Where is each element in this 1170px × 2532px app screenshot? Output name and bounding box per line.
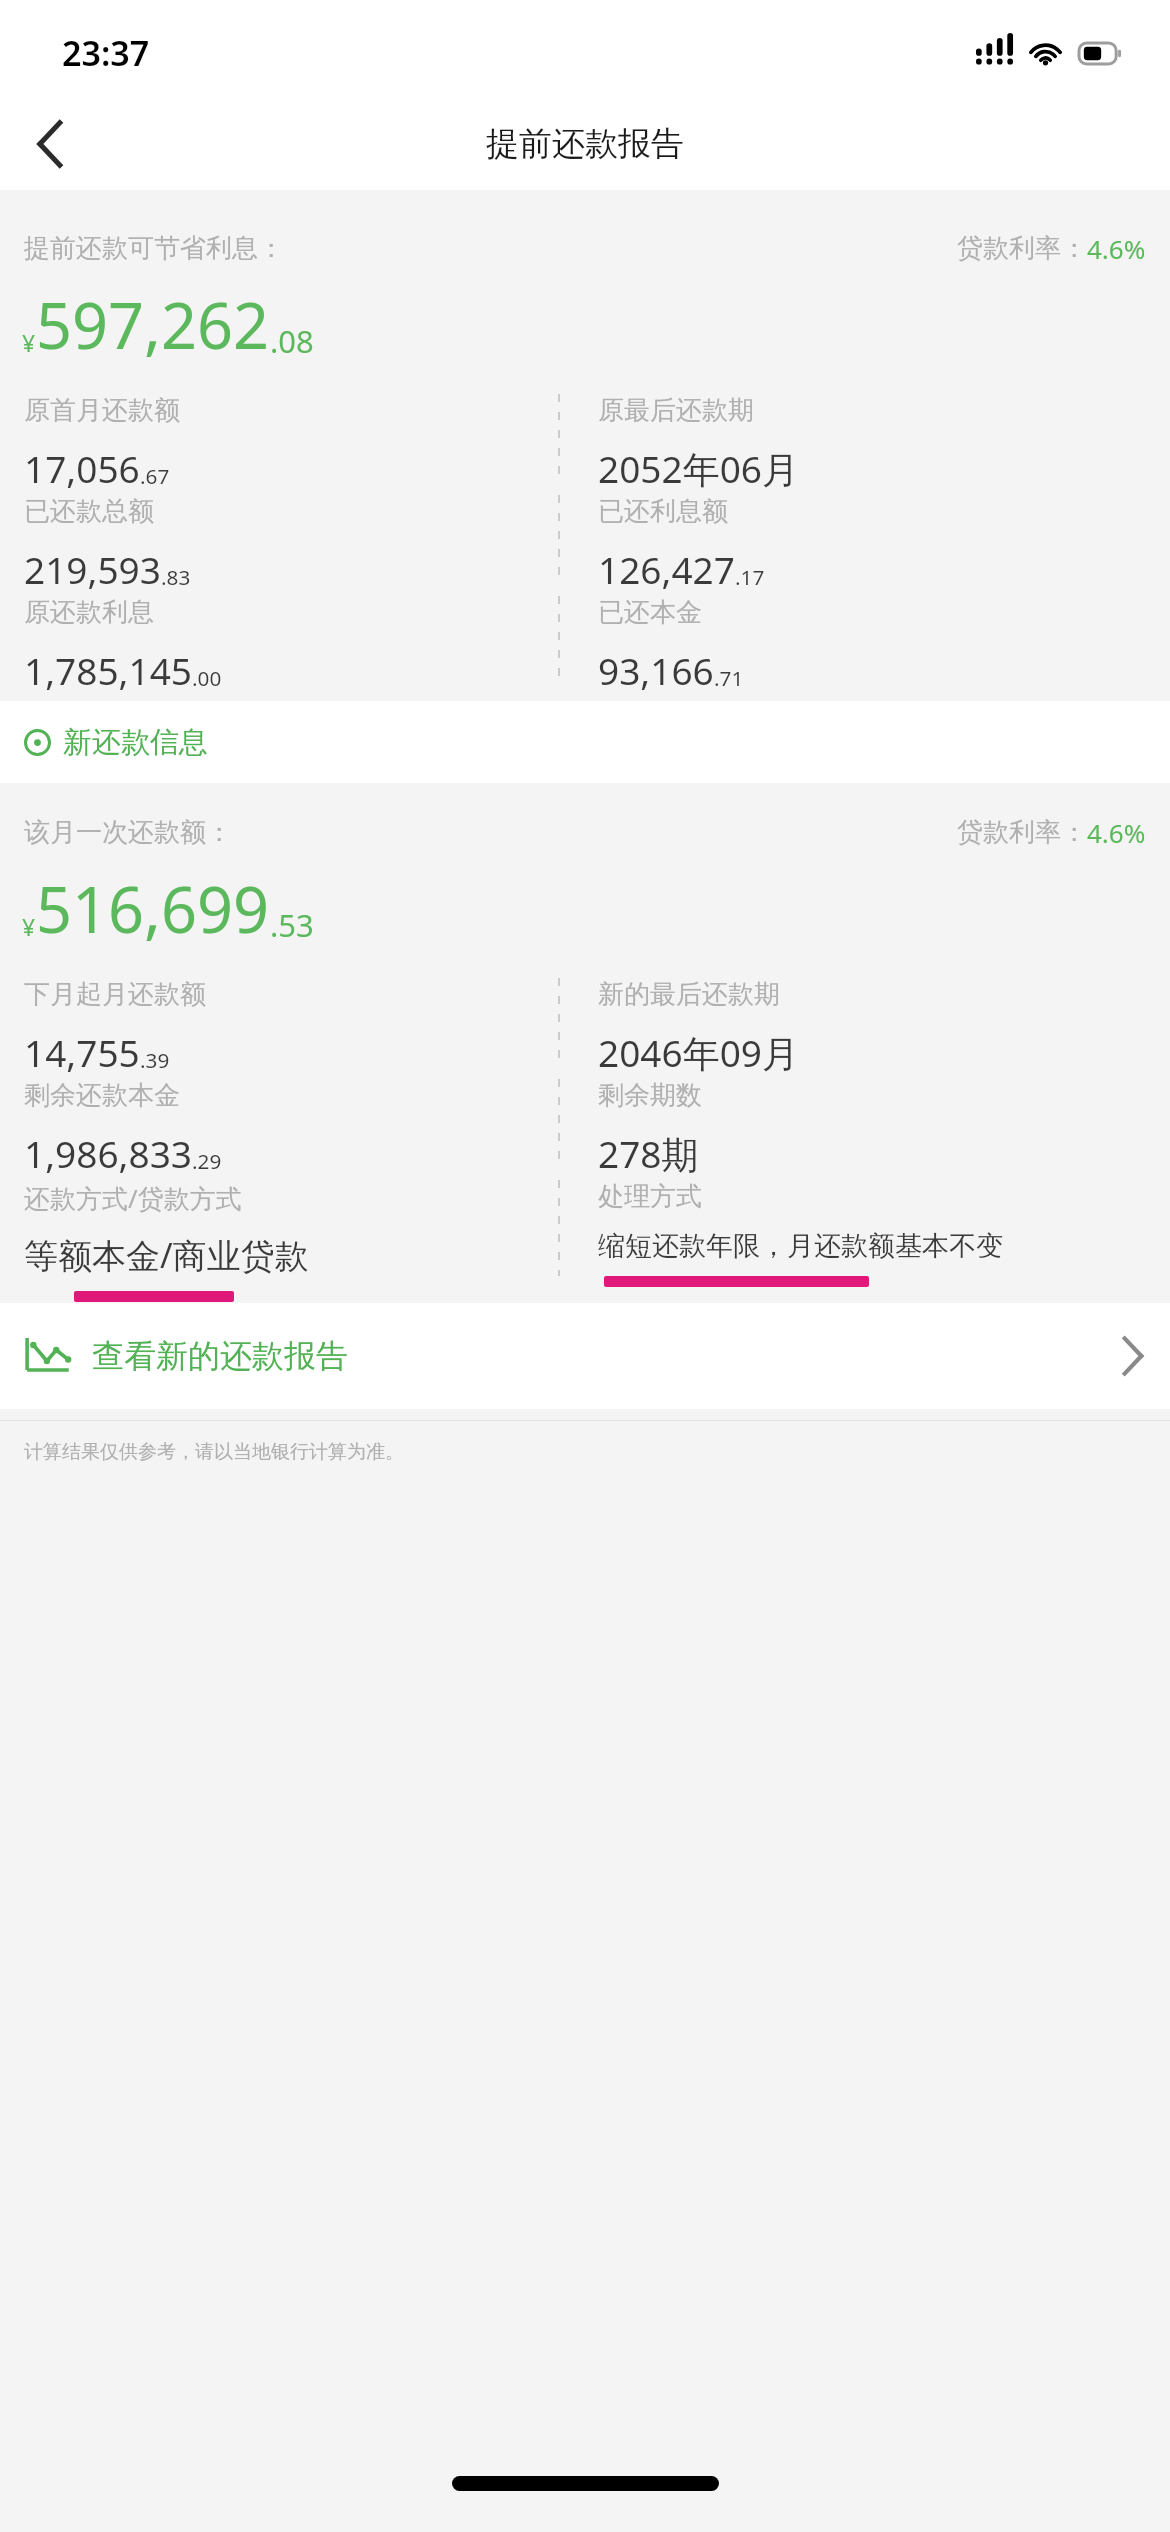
staticText: 原最后还款期 [598,394,754,427]
staticText: 剩余还款本金 [24,1079,180,1112]
staticText: 17,056 [24,443,140,493]
staticText: 提前还款报告 [486,123,684,165]
staticText: 126,427 [598,544,735,594]
staticText: ¥ [22,327,36,358]
staticText: 已还本金 [598,596,702,629]
staticText: .17 [735,563,765,591]
staticText: 已还利息额 [598,495,728,528]
staticText: .39 [140,1046,170,1074]
staticText: .67 [140,462,170,490]
other: View new report [1120,1334,1146,1378]
staticText: 1,986,833 [24,1128,192,1178]
staticText: 查看新的还款报告 [92,1336,348,1376]
staticText: 缩短还款年限，月还款额基本不变 [598,1229,1003,1263]
staticText: 597,262 [36,282,270,368]
staticText: .71 [714,664,744,692]
staticText: 2046年09月 [598,1027,799,1078]
staticText: 新的最后还款期 [598,978,780,1011]
staticText: 原首月还款额 [24,394,180,427]
staticText: 4.6% [1087,815,1146,850]
staticText: 14,755 [24,1027,140,1077]
staticText: 还款方式/贷款方式 [24,1180,242,1216]
staticText: 等额本金/商业贷款 [24,1232,309,1278]
staticText: .83 [161,563,191,591]
button[interactable]: 查看新的还款报告 [0,1303,1170,1409]
staticText: 贷款利率： [957,816,1087,849]
staticText: .00 [192,664,222,692]
staticText: .53 [270,904,314,946]
staticText: 处理方式 [598,1180,702,1213]
staticText: 2052年06月 [598,443,799,494]
staticText: 4.6% [1087,231,1146,266]
staticText: .29 [192,1147,222,1175]
staticText: 新还款信息 [63,724,208,761]
staticText: 516,699 [36,866,270,952]
button[interactable]: Back [0,98,100,190]
staticText: 下月起月还款额 [24,978,206,1011]
staticText: 278期 [598,1128,699,1179]
staticText: 93,166 [598,645,714,695]
staticText: ¥ [22,911,36,942]
staticText: 剩余期数 [598,1079,702,1112]
staticText: 1,785,145 [24,645,192,695]
staticText: 已还款总额 [24,495,154,528]
staticText: 该月一次还款额： [24,816,232,849]
staticText: 贷款利率： [957,232,1087,265]
staticText: .08 [270,320,314,362]
staticText: 计算结果仅供参考，请以当地银行计算为准。 [24,1440,404,1464]
staticText: 原还款利息 [24,596,154,629]
staticText: 提前还款可节省利息： [24,232,284,265]
staticText: 219,593 [24,544,161,594]
staticText: 23:37 [62,30,150,76]
